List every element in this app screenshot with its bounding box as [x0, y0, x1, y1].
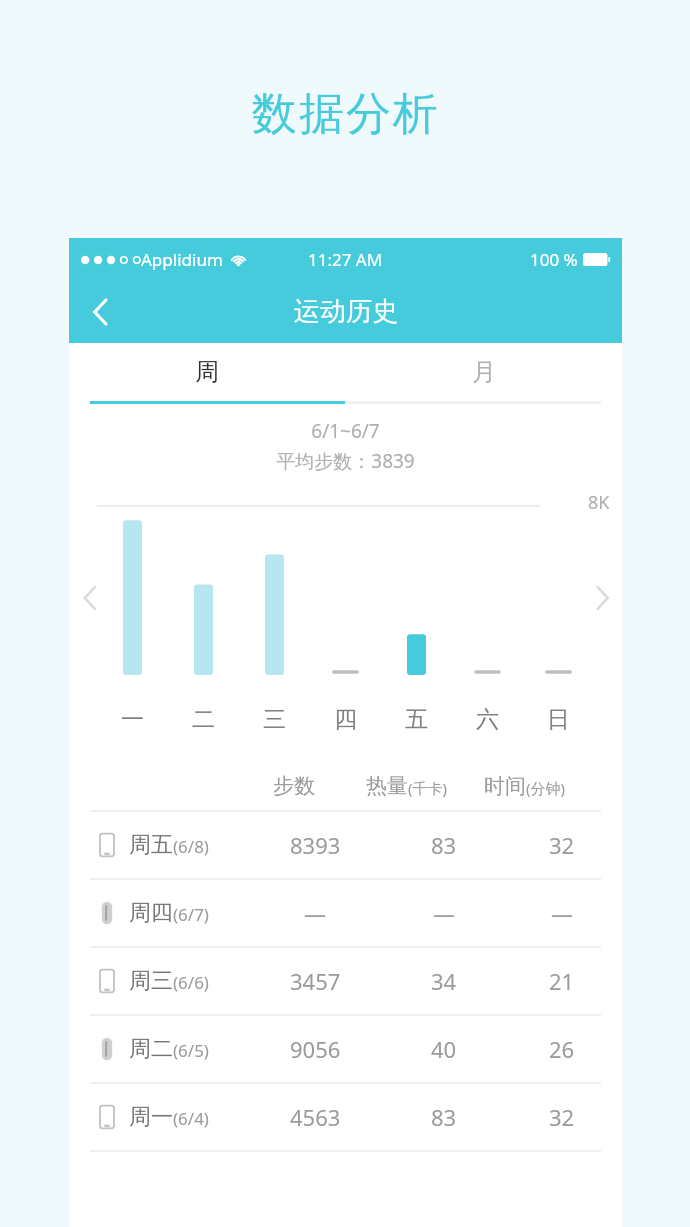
staticText: 100 % — [530, 248, 578, 271]
staticText: 21 — [549, 966, 575, 996]
staticText: (6/4) — [173, 1107, 209, 1130]
staticText: 40 — [431, 1034, 457, 1064]
staticText: 8K — [588, 490, 610, 515]
button[interactable]: 周三 — [69, 948, 622, 1014]
staticText: 83 — [431, 830, 457, 860]
staticText: 一 — [121, 705, 144, 734]
staticText: 周四 — [129, 899, 173, 927]
staticText: Applidium — [141, 248, 223, 271]
button[interactable]: Back — [69, 280, 131, 343]
staticText: 六 — [476, 705, 499, 734]
button[interactable]: 周二 — [69, 1016, 622, 1082]
staticText: 34 — [431, 966, 457, 996]
staticText: (6/6) — [173, 971, 209, 994]
staticText: 二 — [192, 705, 215, 734]
staticText: 26 — [549, 1034, 575, 1064]
staticText: 三 — [263, 705, 286, 734]
staticText: 周二 — [129, 1035, 173, 1063]
staticText: (6/8) — [173, 835, 209, 858]
staticText: 热量 — [366, 773, 408, 799]
staticText: 32 — [549, 1102, 575, 1132]
button[interactable]: 周一 — [69, 1084, 622, 1150]
staticText: (6/5) — [173, 1039, 209, 1062]
staticText: 步数 — [273, 773, 315, 799]
staticText: — — [304, 898, 327, 928]
staticText: 11:27 AM — [308, 248, 383, 271]
staticText: — — [551, 898, 574, 928]
staticText: (千卡) — [408, 778, 448, 798]
staticText: 周一 — [129, 1103, 173, 1131]
staticText: 月 — [472, 357, 496, 387]
staticText: 周五 — [129, 831, 173, 859]
staticText: 4563 — [290, 1102, 341, 1132]
staticText: 6/1~6/7 — [69, 418, 622, 444]
button[interactable]: Next week — [582, 578, 622, 618]
staticText: 四 — [334, 705, 357, 734]
staticText: 8393 — [290, 830, 341, 860]
button[interactable]: 周 — [69, 343, 345, 401]
staticText: 周三 — [129, 967, 173, 995]
staticText: 周 — [195, 357, 219, 387]
staticText: 9056 — [290, 1034, 341, 1064]
button[interactable]: 周五 — [69, 812, 622, 878]
staticText: 83 — [431, 1102, 457, 1132]
staticText: 32 — [549, 830, 575, 860]
staticText: (分钟) — [526, 778, 566, 798]
staticText: 运动历史 — [294, 295, 398, 328]
button[interactable]: Previous week — [69, 578, 109, 618]
staticText: 数据分析 — [251, 86, 439, 143]
staticText: 3457 — [290, 966, 341, 996]
staticText: — — [433, 898, 456, 928]
staticText: 平均步数：3839 — [69, 448, 622, 474]
staticText: 日 — [547, 705, 570, 734]
staticText: (6/7) — [173, 903, 209, 926]
staticText: 时间 — [484, 773, 526, 799]
button[interactable]: 月 — [345, 343, 622, 401]
button[interactable]: 周四 — [69, 880, 622, 946]
staticText: 五 — [405, 705, 428, 734]
